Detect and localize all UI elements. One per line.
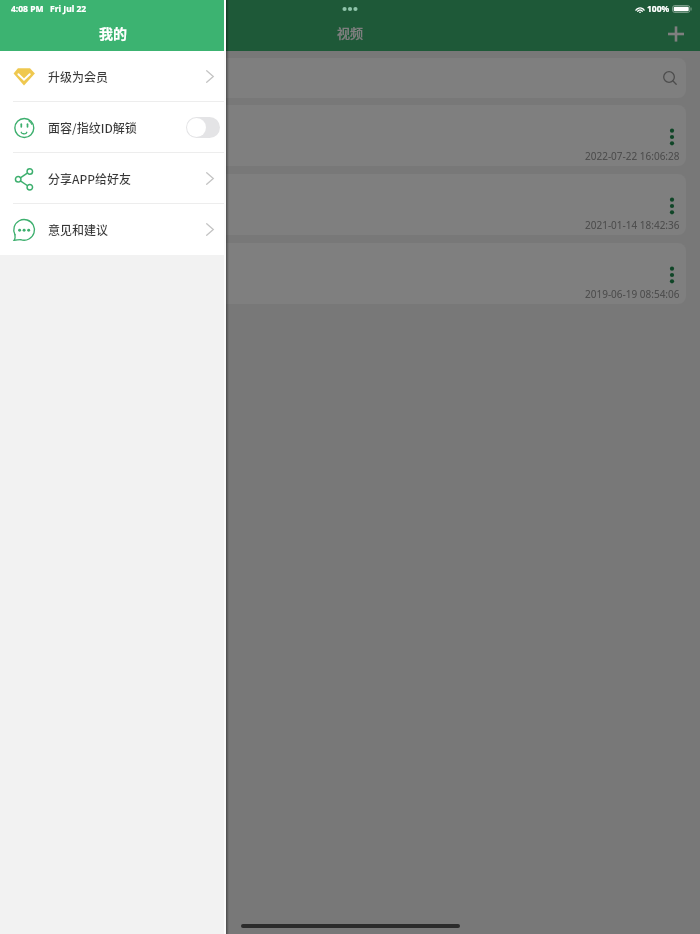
button[interactable]: 升级为会员 xyxy=(0,51,226,102)
button[interactable]: Face or fingerprint unlock toggle xyxy=(186,117,220,138)
button[interactable]: 面容/指纹ID解锁 xyxy=(0,102,226,153)
button[interactable]: More options xyxy=(14,243,686,304)
button[interactable]: More options xyxy=(14,174,686,235)
staticText: 2021-01-14 18:42:36 xyxy=(585,218,680,232)
button[interactable]: More options xyxy=(658,192,686,220)
button[interactable]: Add xyxy=(663,21,689,47)
staticText: 2022-07-22 16:06:28 xyxy=(585,149,680,163)
staticText: 2019-06-19 08:54:06 xyxy=(585,287,680,301)
staticText: 我的 xyxy=(99,23,127,43)
button[interactable] xyxy=(0,0,700,934)
staticText: 4:08 PM Fri Jul 22 xyxy=(11,3,87,15)
staticText: 升级为会员 xyxy=(48,68,109,85)
staticText: 分享APP给好友 xyxy=(48,170,132,187)
button[interactable]: More options xyxy=(658,123,686,151)
button[interactable]: More options xyxy=(658,261,686,289)
staticText: 视频 xyxy=(337,23,364,42)
button[interactable]: Search xyxy=(14,58,686,98)
staticText: 意见和建议 xyxy=(48,221,109,238)
button[interactable]: 分享APP给好友 xyxy=(0,153,226,204)
staticText: 100% xyxy=(647,3,670,15)
staticText: 面容/指纹ID解锁 xyxy=(48,119,137,136)
other: Search xyxy=(660,68,680,88)
button[interactable]: 意见和建议 xyxy=(0,204,226,255)
button[interactable]: More options xyxy=(14,105,686,166)
